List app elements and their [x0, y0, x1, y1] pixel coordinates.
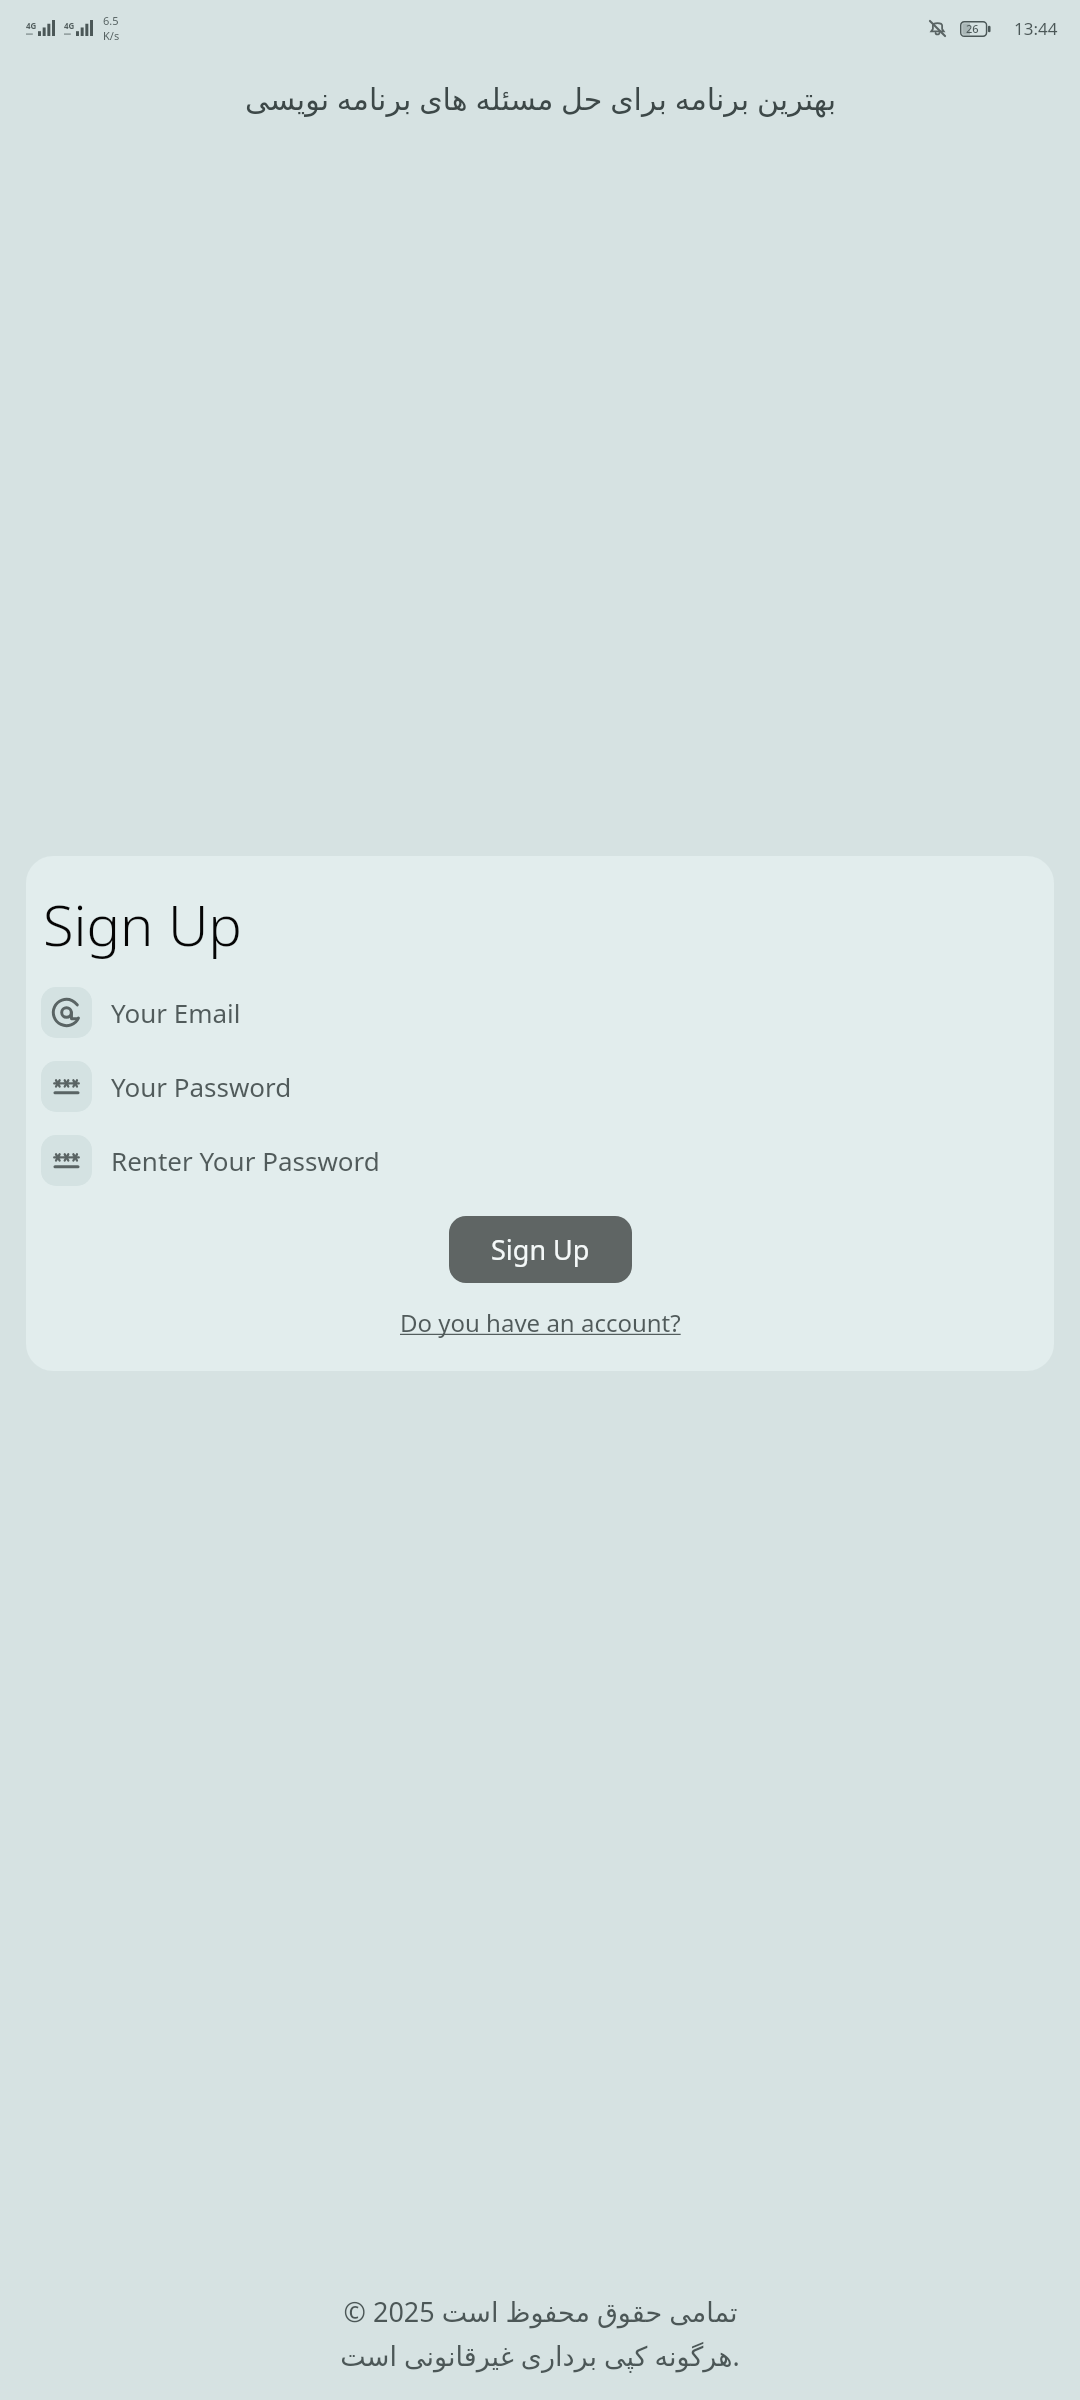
button[interactable]: Do you have an account? — [394, 1300, 687, 1345]
staticText: Do you have an account? — [400, 1306, 681, 1339]
staticText: Sign Up — [491, 1231, 590, 1268]
staticText: 6.5 — [103, 13, 119, 28]
staticText: © 2025 تمامی حقوق محفوظ است — [343, 2293, 738, 2330]
staticText: K/s — [103, 28, 120, 43]
staticText: 26 — [966, 21, 979, 36]
button[interactable]: Renter Your Password — [26, 1132, 1054, 1189]
button[interactable]: Your Password — [26, 1058, 1054, 1115]
staticText: 4G — [64, 20, 75, 31]
staticText: بهترین برنامه برای حل مسئله های برنامه ن… — [245, 78, 836, 119]
staticText: Your Email — [111, 995, 241, 1030]
staticText: Sign Up — [43, 886, 242, 962]
staticText: 4G — [26, 20, 37, 31]
staticText: 13:44 — [1014, 17, 1058, 40]
staticText: هرگونه کپی برداری غیرقانونی است. — [340, 2337, 740, 2374]
other: Silent mode — [927, 18, 948, 39]
staticText: Your Password — [111, 1069, 292, 1104]
button[interactable]: Your Email — [26, 984, 1054, 1041]
staticText: Renter Your Password — [111, 1143, 380, 1178]
button[interactable]: Sign Up — [449, 1216, 632, 1283]
